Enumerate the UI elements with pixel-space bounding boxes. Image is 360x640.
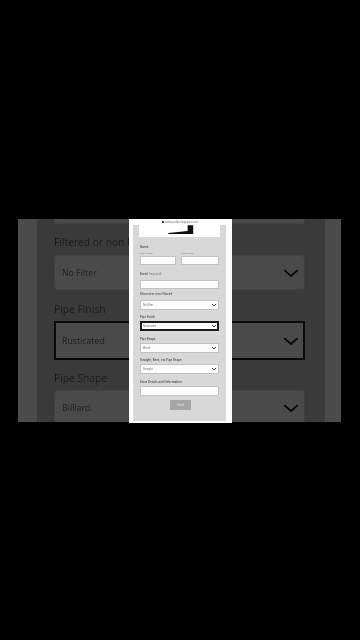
staticText: First Name	[140, 251, 153, 254]
staticText: Rusticated	[62, 335, 105, 347]
staticText: Send	[177, 403, 185, 407]
button[interactable]: Billiard	[54, 390, 305, 422]
staticText: Name	[140, 245, 149, 249]
button[interactable]	[140, 386, 219, 396]
button[interactable]	[181, 256, 219, 265]
staticText: Email	[140, 272, 148, 276]
staticText: Pipe Finish	[140, 315, 156, 319]
staticText: Straight	[143, 367, 153, 371]
button[interactable]	[140, 280, 219, 289]
staticText: Extra Details and Information	[140, 380, 182, 384]
staticText: Last Name	[181, 251, 194, 254]
button[interactable]: Straight	[140, 364, 219, 374]
staticText: Billiard	[62, 402, 91, 414]
staticText: Rusticated	[143, 324, 156, 328]
button[interactable]: Send	[170, 400, 191, 410]
staticText: Filtered or non Filtered	[140, 292, 173, 296]
staticText: Filtered or non Filtered	[54, 235, 164, 249]
button[interactable]: Rusticated	[140, 321, 219, 331]
staticText: No Filter	[143, 303, 154, 307]
staticText: www.jackjanespipes.com	[165, 220, 199, 224]
button[interactable]	[140, 256, 176, 265]
button[interactable]: No Filter	[140, 300, 219, 310]
staticText: Straight, Bent, etc Pipe Shape	[140, 358, 182, 362]
staticText: Wood	[143, 346, 151, 350]
button[interactable]: No Filter	[54, 255, 305, 290]
staticText: Pipe Shape	[140, 337, 156, 341]
button[interactable]: Wood	[140, 343, 219, 353]
staticText: No Filter	[62, 267, 97, 279]
button[interactable]: Rusticated	[54, 321, 305, 360]
staticText: Pipe Finish	[54, 302, 106, 316]
staticText: (required)	[149, 272, 162, 276]
staticText: Pipe Shape	[54, 371, 108, 385]
